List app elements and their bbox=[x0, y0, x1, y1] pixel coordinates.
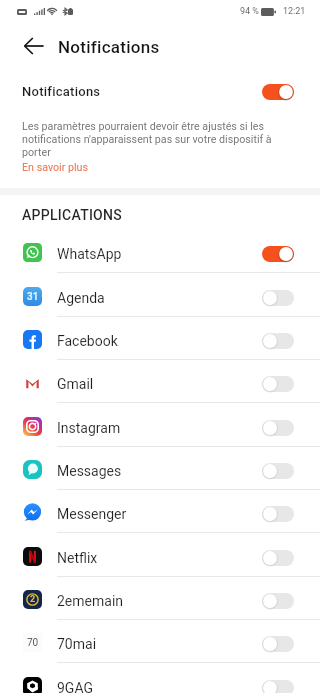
button[interactable]: Netflix bbox=[0, 534, 320, 577]
staticText: Netflix bbox=[57, 550, 98, 566]
button[interactable]: Désactivé bbox=[262, 333, 294, 349]
staticText: Agenda bbox=[57, 290, 105, 306]
button[interactable]: Désactivé bbox=[262, 636, 294, 652]
button[interactable]: Désactivé bbox=[262, 593, 294, 609]
button[interactable]: Désactivé bbox=[262, 506, 294, 522]
button[interactable]: Gmail bbox=[0, 360, 320, 403]
button[interactable]: Désactivé bbox=[262, 463, 294, 479]
staticText: APPLICATIONS bbox=[22, 207, 122, 223]
button[interactable]: Facebook bbox=[0, 317, 320, 360]
button[interactable]: Retour bbox=[17, 29, 51, 63]
staticText: Messenger bbox=[57, 506, 127, 522]
button[interactable]: Désactivé bbox=[262, 550, 294, 566]
staticText: En savoir plus bbox=[22, 161, 88, 174]
button[interactable]: Activé bbox=[262, 246, 294, 262]
staticText: 12:21 bbox=[283, 6, 306, 17]
staticText: 70 bbox=[27, 637, 39, 649]
staticText: WhatsApp bbox=[57, 246, 122, 262]
staticText: 70mai bbox=[57, 636, 97, 652]
button[interactable]: 70 bbox=[0, 620, 320, 663]
staticText: 9GAG bbox=[57, 680, 93, 693]
staticText: Facebook bbox=[57, 333, 118, 349]
staticText: 2 bbox=[30, 594, 36, 605]
button[interactable]: 2 bbox=[0, 577, 320, 620]
staticText: Les paramètres pourraient devoir être aj… bbox=[22, 120, 280, 159]
button[interactable]: En savoir plus bbox=[16, 159, 94, 176]
button[interactable]: Désactivé bbox=[262, 290, 294, 306]
button[interactable]: Messages bbox=[0, 447, 320, 490]
button[interactable]: Instagram bbox=[0, 404, 320, 447]
button[interactable]: Désactivé bbox=[262, 680, 294, 693]
button[interactable]: Désactivé bbox=[262, 420, 294, 436]
staticText: 94 % bbox=[240, 6, 259, 17]
staticText: Instagram bbox=[57, 420, 121, 436]
button[interactable]: Messenger bbox=[0, 490, 320, 533]
staticText: 2ememain bbox=[57, 593, 124, 609]
staticText: Gmail bbox=[57, 376, 94, 392]
button[interactable]: Désactivé bbox=[262, 376, 294, 392]
staticText: 31 bbox=[27, 291, 39, 303]
button[interactable]: Activé bbox=[262, 84, 294, 100]
staticText: Notifications bbox=[58, 37, 160, 57]
button[interactable]: 31 bbox=[0, 274, 320, 317]
button[interactable]: WhatsApp bbox=[0, 230, 320, 273]
staticText: Notifications bbox=[22, 84, 101, 99]
staticText: Messages bbox=[57, 463, 122, 479]
button[interactable]: 9GAG bbox=[0, 664, 320, 693]
